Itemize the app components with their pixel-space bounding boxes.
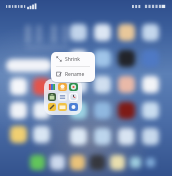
button[interactable]: App icon	[58, 93, 67, 101]
button[interactable]: App	[70, 128, 87, 145]
button[interactable]: App	[94, 102, 111, 119]
button[interactable]: App	[94, 50, 111, 67]
button[interactable]: App	[33, 102, 50, 119]
button[interactable]: App	[10, 102, 27, 119]
button[interactable]: App	[118, 24, 135, 41]
staticText: Rename	[65, 71, 85, 78]
button[interactable]: App	[142, 102, 159, 119]
button[interactable]: App icon	[48, 83, 56, 91]
button[interactable]: App icon	[48, 93, 56, 101]
button[interactable]: App	[10, 78, 27, 95]
button[interactable]: App	[142, 50, 159, 67]
button[interactable]: Search	[6, 59, 52, 72]
button[interactable]: App icon	[69, 93, 78, 101]
button[interactable]: App	[70, 50, 87, 67]
button[interactable]: Dock app	[50, 155, 65, 170]
button[interactable]: App	[94, 76, 111, 93]
button[interactable]: App	[118, 102, 135, 119]
button[interactable]: App icon	[48, 103, 56, 111]
button[interactable]: App	[142, 76, 159, 93]
button[interactable]: App icon	[69, 83, 78, 91]
button[interactable]: App	[142, 24, 159, 41]
button[interactable]: App icon	[58, 103, 67, 111]
button[interactable]: App	[118, 50, 135, 67]
button[interactable]: Dock app	[90, 155, 105, 170]
button[interactable]: App	[33, 126, 50, 143]
button[interactable]: Dock app	[30, 155, 45, 170]
button[interactable]: App icon	[69, 103, 78, 111]
button[interactable]: App	[94, 128, 111, 145]
button[interactable]: App	[70, 76, 87, 93]
staticText: Shrink	[65, 56, 80, 63]
button[interactable]: Dock app	[130, 157, 141, 168]
button[interactable]: Rename	[51, 67, 95, 81]
button[interactable]: Dock app	[70, 155, 85, 170]
button[interactable]: App	[33, 78, 50, 95]
button[interactable]: App icon	[58, 83, 67, 91]
button[interactable]: App	[70, 102, 87, 119]
button[interactable]: App	[118, 128, 135, 145]
button[interactable]: App	[70, 24, 87, 41]
button[interactable]: App	[118, 76, 135, 93]
button[interactable]: App	[142, 128, 159, 145]
button[interactable]: App	[10, 126, 27, 143]
button[interactable]: App	[94, 24, 111, 41]
button[interactable]: Dock app	[110, 155, 125, 170]
button[interactable]: Dock app	[146, 158, 155, 167]
button[interactable]: Shrink	[51, 52, 95, 66]
button[interactable]: Folder	[44, 79, 82, 115]
